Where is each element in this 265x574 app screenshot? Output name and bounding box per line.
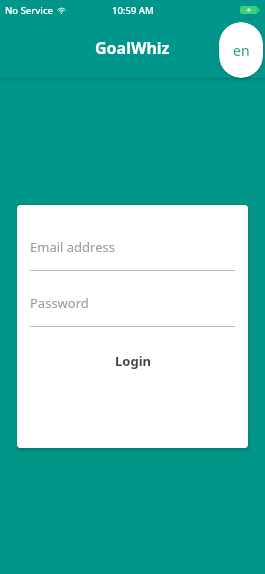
staticText: Login: [115, 352, 151, 370]
button[interactable]: Email address: [30, 238, 235, 254]
staticText: GoalWhiz: [95, 37, 170, 59]
staticText: 10:59 AM: [112, 4, 154, 17]
staticText: No Service: [5, 4, 54, 17]
button[interactable]: en: [219, 22, 263, 78]
staticText: Password: [30, 294, 89, 310]
button[interactable]: Password: [30, 294, 235, 310]
staticText: en: [233, 41, 250, 60]
button[interactable]: Login: [30, 347, 235, 375]
staticText: Email address: [30, 238, 115, 254]
